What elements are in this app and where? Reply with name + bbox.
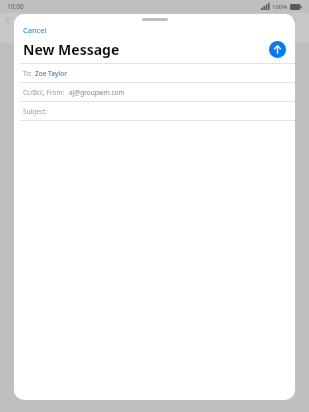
staticText: aj@groupwm.com bbox=[69, 88, 125, 97]
button[interactable]: Send bbox=[269, 41, 286, 58]
staticText: Zoe Taylor bbox=[35, 69, 67, 78]
staticText: Cancel bbox=[23, 25, 47, 35]
staticText: To: bbox=[23, 69, 32, 78]
staticText: Cc/Bcc, From: bbox=[23, 88, 65, 97]
button[interactable]: Cc/Bcc, From: bbox=[14, 83, 295, 101]
button[interactable]: Cancel bbox=[14, 24, 56, 36]
button[interactable]: Subject: bbox=[14, 102, 295, 120]
button[interactable]: To: bbox=[14, 64, 295, 82]
staticText: 10:00 bbox=[7, 2, 24, 11]
staticText: 100% bbox=[272, 3, 288, 11]
staticText: New Message bbox=[23, 40, 120, 59]
staticText: Subject: bbox=[23, 107, 48, 116]
